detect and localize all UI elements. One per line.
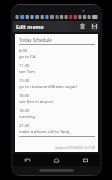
staticText: make a phone call to Taraj [19,129,70,135]
button[interactable]: Delete [77,21,88,32]
staticText: see Tom [19,69,35,75]
staticText: Updated:2014/06/06 14:17:30 [54,146,95,150]
staticText: Today Schedule [19,37,52,43]
staticText: go to CA [19,54,36,60]
button[interactable]: Home [42,154,71,166]
staticText: 11:30 [19,63,30,69]
button[interactable]: Today Schedule [15,34,98,152]
staticText: 21:30 [19,123,30,129]
staticText: go to restaurant(Brown sugar) [19,84,78,90]
button[interactable]: Recent apps [71,154,100,166]
staticText: 18:00 [19,93,30,99]
staticText: 6:00 [19,48,28,54]
button[interactable]: Edit memo [13,21,77,32]
staticText: 18:30 [19,108,30,114]
staticText: see Ken in airport [19,99,53,105]
staticText: meeting [19,114,36,120]
button[interactable]: Back [13,154,42,166]
button[interactable]: Save [88,21,100,32]
staticText: 13:30 [19,78,30,84]
staticText: Edit memo [16,23,44,30]
